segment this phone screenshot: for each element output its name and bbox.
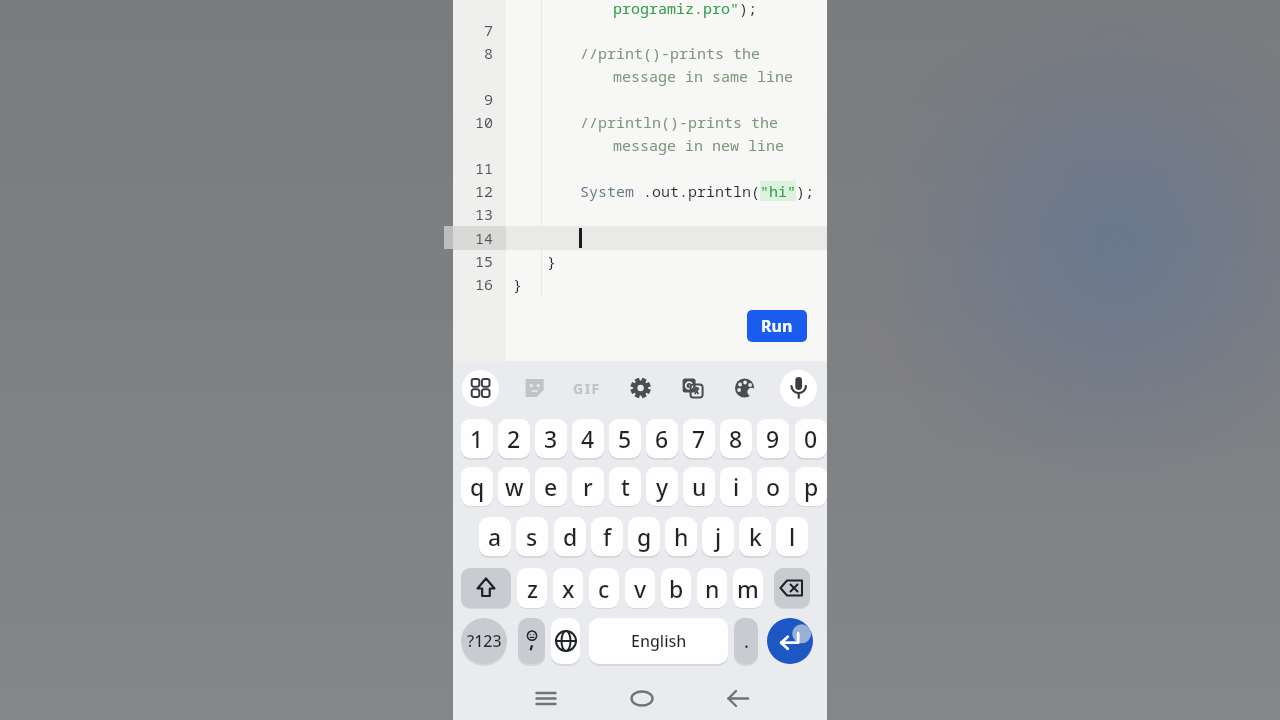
button[interactable] — [774, 568, 810, 608]
button[interactable]: k — [739, 517, 771, 556]
button[interactable]: m — [733, 568, 763, 608]
button[interactable]: r — [572, 467, 604, 506]
button[interactable]: English — [589, 618, 728, 664]
button[interactable]: e — [535, 467, 567, 506]
staticText: x — [562, 573, 575, 604]
button[interactable] — [780, 370, 817, 407]
button[interactable]: q — [461, 467, 493, 506]
staticText: 3 — [544, 423, 558, 454]
button[interactable]: o — [757, 467, 789, 506]
staticText: English — [631, 630, 687, 652]
staticText: t — [621, 471, 630, 502]
staticText: j — [715, 521, 722, 552]
button[interactable]: 3 — [535, 419, 567, 458]
staticText: programiz.pro"); — [613, 0, 758, 18]
staticText: y — [656, 471, 669, 502]
staticText: w — [505, 471, 524, 502]
staticText: z — [527, 573, 538, 604]
button[interactable]: j — [702, 517, 734, 556]
staticText: 9 — [484, 89, 494, 109]
button[interactable] — [551, 618, 580, 664]
button[interactable]: Run — [747, 310, 807, 342]
button[interactable]: 5 — [609, 419, 641, 458]
staticText: message in new line — [613, 135, 785, 155]
staticText: 9 — [766, 423, 780, 454]
staticText: m — [737, 573, 759, 604]
button[interactable]: l — [776, 517, 808, 556]
staticText: k — [749, 521, 762, 552]
staticText: 7 — [692, 423, 706, 454]
button[interactable]: i — [720, 467, 752, 506]
staticText: //print()-prints the — [580, 43, 761, 63]
staticText: Run — [761, 315, 793, 337]
button[interactable] — [719, 680, 757, 718]
staticText: } — [547, 251, 557, 271]
button[interactable]: 0 — [795, 419, 827, 458]
button[interactable]: s — [516, 517, 548, 556]
button[interactable]: GIF — [569, 361, 605, 415]
staticText: r — [583, 471, 593, 502]
button[interactable]: w — [498, 467, 530, 506]
staticText: g — [637, 521, 652, 552]
button[interactable]: 1 — [461, 419, 493, 458]
button[interactable]: p — [795, 467, 827, 506]
button[interactable]: c — [589, 568, 619, 608]
button[interactable] — [622, 369, 659, 406]
button[interactable] — [767, 618, 813, 664]
button[interactable]: 8 — [720, 419, 752, 458]
staticText: 4 — [581, 423, 595, 454]
button[interactable]: 9 — [757, 419, 789, 458]
button[interactable] — [726, 369, 763, 406]
staticText: c — [598, 573, 610, 604]
staticText: a — [488, 521, 502, 552]
button[interactable] — [674, 369, 711, 406]
staticText: 15 — [475, 251, 494, 271]
button[interactable]: h — [665, 517, 697, 556]
staticText: s — [526, 521, 538, 552]
button[interactable]: t — [609, 467, 641, 506]
staticText: n — [705, 573, 720, 604]
staticText: GIF — [573, 379, 601, 398]
staticText: 6 — [655, 423, 669, 454]
staticText: 11 — [475, 158, 494, 178]
button[interactable]: n — [697, 568, 727, 608]
staticText: message in same line — [613, 66, 794, 86]
button[interactable]: d — [554, 517, 586, 556]
staticText: b — [669, 573, 684, 604]
button[interactable]: x — [553, 568, 583, 608]
button[interactable]: 6 — [646, 419, 678, 458]
button[interactable] — [623, 680, 661, 718]
staticText: System .out.println("hi"); — [580, 181, 815, 201]
button[interactable]: f — [591, 517, 623, 556]
button[interactable]: ?123 — [461, 618, 507, 664]
button[interactable] — [516, 369, 553, 406]
staticText: f — [603, 521, 612, 552]
button[interactable]: 2 — [498, 419, 530, 458]
button[interactable]: . — [734, 618, 758, 664]
button[interactable] — [461, 568, 511, 608]
button[interactable]: a — [479, 517, 511, 556]
button[interactable]: 7 — [683, 419, 715, 458]
button[interactable]: v — [625, 568, 655, 608]
staticText: 14 — [475, 228, 494, 248]
staticText: q — [470, 471, 485, 502]
button[interactable] — [462, 370, 499, 407]
staticText: 8 — [484, 43, 494, 63]
button[interactable]: z — [517, 568, 547, 608]
button[interactable]: 4 — [572, 419, 604, 458]
staticText: o — [766, 471, 781, 502]
staticText: } — [513, 274, 523, 294]
staticText: i — [733, 471, 740, 502]
button[interactable]: u — [683, 467, 715, 506]
button[interactable] — [518, 618, 545, 664]
button[interactable]: g — [628, 517, 660, 556]
button[interactable]: b — [661, 568, 691, 608]
staticText: 12 — [475, 181, 494, 201]
button[interactable] — [527, 680, 565, 718]
staticText: h — [674, 521, 689, 552]
staticText: l — [789, 521, 796, 552]
staticText: 0 — [804, 423, 818, 454]
button[interactable]: y — [646, 467, 678, 506]
staticText: 13 — [475, 204, 494, 224]
staticText: 16 — [475, 274, 494, 294]
